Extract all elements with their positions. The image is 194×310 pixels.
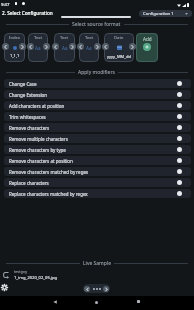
staticText: 2. Select Configuration [2, 10, 53, 16]
button[interactable]: Add characters at position [4, 101, 191, 110]
button[interactable]: Recents [137, 300, 140, 303]
button[interactable]: Next [129, 43, 136, 50]
staticText: Apply modifiers [78, 69, 115, 76]
staticText: 1_img_2020_02_05.jpg [14, 275, 57, 281]
button[interactable]: Settings [1, 284, 8, 291]
button[interactable]: Replace characters matched by regex [4, 189, 191, 198]
button[interactable]: Previous [27, 43, 34, 50]
button[interactable]: Home [95, 301, 98, 304]
button[interactable]: Next [94, 43, 101, 50]
staticText: Remove characters by type [9, 147, 66, 153]
staticText: Remove characters [9, 125, 50, 131]
button[interactable]: Previous [2, 43, 9, 50]
staticText: Trim whitespaces [9, 114, 46, 120]
staticText: Text [85, 35, 94, 41]
button[interactable]: Previous [102, 43, 109, 50]
staticText: Live Sample [83, 260, 111, 267]
staticText: test.jpg [14, 269, 27, 274]
staticText: Change Case [9, 81, 37, 87]
button[interactable]: Next [69, 43, 76, 50]
button[interactable]: Text [79, 33, 99, 62]
button[interactable]: Next [43, 43, 50, 50]
button[interactable]: Remove characters matched by regex [4, 167, 191, 176]
staticText: yyyy_MM_dd [107, 54, 131, 59]
staticText: Text [34, 35, 43, 41]
button[interactable]: Add [136, 33, 158, 62]
button[interactable]: Configuration 1 [139, 10, 192, 17]
button[interactable]: Next [19, 43, 26, 50]
staticText: Remove characters matched by regex [9, 169, 89, 175]
button[interactable]: Remove characters [4, 123, 191, 132]
button[interactable]: Replace characters [4, 178, 191, 187]
staticText: Date [114, 35, 124, 41]
staticText: Replace characters [9, 180, 49, 186]
button[interactable]: Previous [77, 43, 84, 50]
button[interactable]: Remove multiple characters [4, 134, 191, 143]
staticText: Select source format [72, 21, 121, 28]
button[interactable]: Text [54, 33, 75, 62]
button[interactable]: Trim whitespaces [4, 112, 191, 121]
staticText: 9:37 [1, 1, 10, 7]
staticText: Remove characters at position [9, 158, 73, 164]
button[interactable]: Date [104, 33, 134, 62]
button[interactable]: Previous [83, 284, 110, 293]
staticText: Aa [35, 45, 41, 51]
staticText: Text [60, 35, 69, 41]
staticText: Add [143, 36, 152, 42]
button[interactable]: Back [53, 300, 57, 304]
button[interactable]: Rename preview [3, 272, 9, 278]
button[interactable]: Remove characters at position [4, 156, 191, 165]
staticText: Change Extension [9, 92, 48, 98]
button[interactable]: Previous [84, 286, 90, 292]
staticText: Aa [62, 45, 68, 51]
button[interactable]: Text [28, 33, 48, 62]
button[interactable]: Change Extension [4, 90, 191, 99]
staticText: Add characters at position [9, 103, 65, 109]
staticText: Aa [86, 45, 92, 51]
staticText: Configuration 1 [143, 11, 174, 17]
staticText: Remove multiple characters [9, 136, 68, 142]
button[interactable]: Previous [52, 43, 59, 50]
button[interactable]: Index [4, 33, 25, 62]
button[interactable]: Change Case [4, 79, 191, 88]
staticText: Index [9, 35, 21, 41]
staticText: Replace characters matched by regex [9, 191, 88, 197]
button[interactable]: Next [103, 286, 109, 292]
button[interactable]: Remove characters by type [4, 145, 191, 154]
staticText: 1,1,1 [10, 53, 20, 59]
